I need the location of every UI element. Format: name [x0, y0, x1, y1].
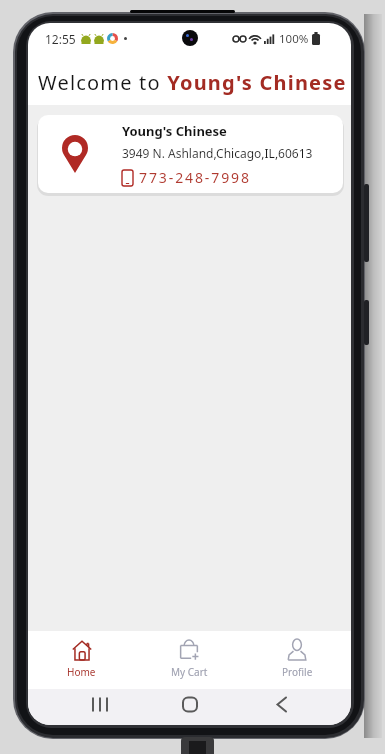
button[interactable]: Young's Chinese: [38, 115, 343, 193]
staticText: 12:55: [45, 31, 76, 47]
staticText: Welcome to Young's Chinese: [38, 69, 347, 96]
staticText: 100%: [279, 31, 309, 47]
staticText: Profile: [282, 665, 313, 679]
button[interactable]: My Cart: [135, 631, 243, 689]
staticText: My Cart: [171, 665, 208, 679]
staticText: 773-248-7998: [139, 168, 251, 187]
staticText: Young's Chinese: [122, 122, 227, 140]
staticText: 3949 N. Ashland,Chicago,IL,60613: [122, 145, 313, 161]
button[interactable]: Home: [28, 631, 135, 689]
button[interactable]: Profile: [243, 631, 351, 689]
staticText: Home: [67, 665, 96, 679]
